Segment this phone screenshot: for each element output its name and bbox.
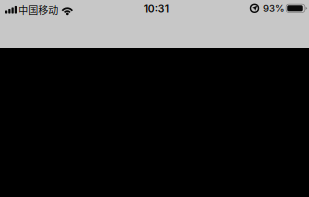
staticText: 10:31 xyxy=(144,2,169,15)
staticText: 中国移动 xyxy=(18,2,58,17)
staticText: 93% xyxy=(263,2,285,14)
